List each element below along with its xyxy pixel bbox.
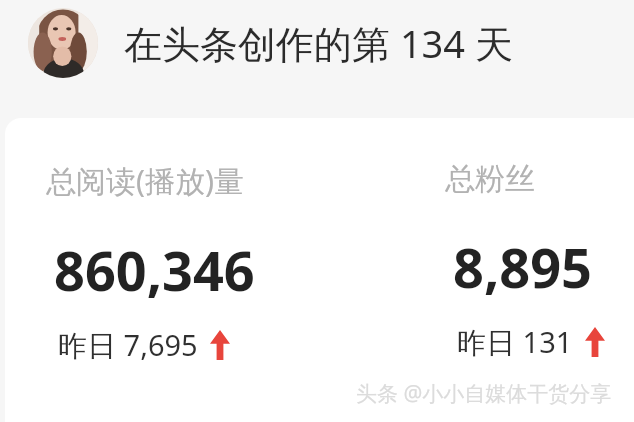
other: Increase <box>210 330 230 360</box>
staticText: 总阅读(播放)量 <box>46 160 244 201</box>
button[interactable]: 总粉丝 <box>445 160 593 362</box>
staticText: 昨日 7,695 <box>58 325 198 365</box>
button[interactable]: Profile photo <box>0 0 634 118</box>
button[interactable]: 总阅读(播放)量 <box>46 160 247 365</box>
staticText: 8,895 <box>453 230 592 304</box>
staticText: 昨日 131 <box>457 322 573 362</box>
staticText: 头条 @小小自媒体干货分享 <box>356 379 612 408</box>
button[interactable]: Profile photo <box>28 8 98 78</box>
staticText: 总粉丝 <box>445 160 535 198</box>
staticText: 860,346 <box>54 233 255 307</box>
staticText: 在头条创作的第 134 天 <box>124 17 513 69</box>
other: Increase <box>585 327 605 357</box>
